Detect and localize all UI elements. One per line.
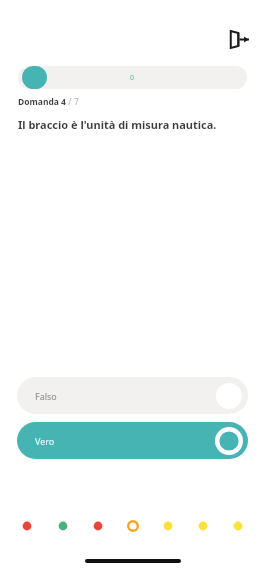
- staticText: Domanda 4: [18, 96, 66, 108]
- button[interactable]: [161, 519, 175, 533]
- button[interactable]: Esci: [226, 26, 252, 52]
- button[interactable]: [56, 519, 70, 533]
- staticText: Vero: [35, 435, 55, 447]
- button[interactable]: [20, 519, 34, 533]
- staticText: 0: [130, 73, 135, 83]
- staticText: 7: [74, 96, 79, 108]
- staticText: Il braccio è l'unità di misura nautica.: [18, 117, 217, 132]
- button[interactable]: [126, 519, 140, 533]
- button[interactable]: [91, 519, 105, 533]
- button[interactable]: [196, 519, 210, 533]
- button[interactable]: Vero: [17, 422, 248, 459]
- button[interactable]: [231, 519, 245, 533]
- staticText: /: [66, 96, 74, 108]
- button[interactable]: Falso: [17, 377, 248, 414]
- staticText: Falso: [35, 390, 57, 402]
